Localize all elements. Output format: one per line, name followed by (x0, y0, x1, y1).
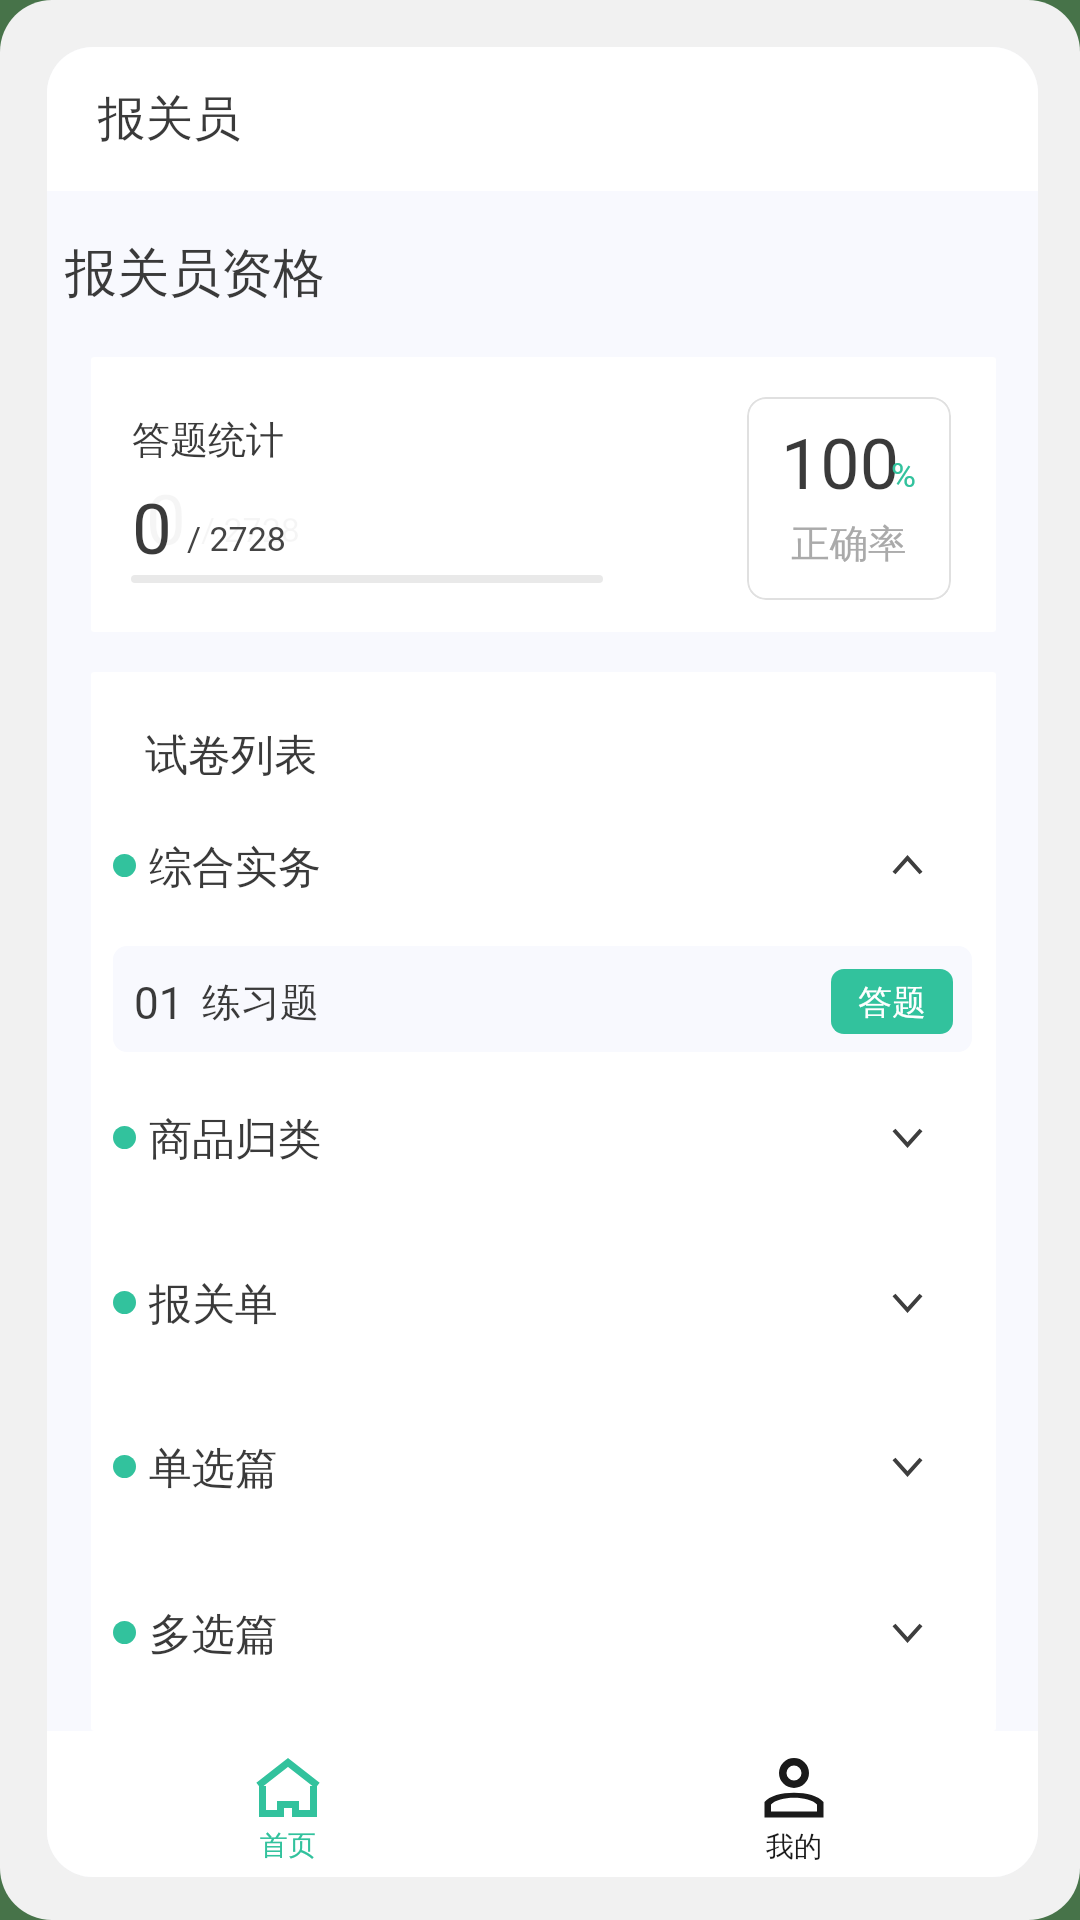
staticText: 报关单 (149, 1278, 278, 1332)
staticText: 综合实务 (149, 841, 321, 895)
button[interactable]: 多选篇 (91, 1592, 996, 1672)
button[interactable]: 首页 (218, 1731, 358, 1877)
staticText: / 2728 (201, 510, 300, 550)
staticText: 正确率 (791, 520, 907, 569)
staticText: 0 (132, 488, 172, 571)
button[interactable]: 商品归类 (91, 1097, 996, 1177)
staticText: 单选篇 (149, 1442, 278, 1496)
staticText: 首页 (260, 1828, 316, 1863)
staticText: 报关员 (98, 89, 241, 149)
staticText: 试卷列表 (145, 729, 317, 783)
staticText: 我的 (766, 1829, 822, 1864)
staticText: 报关员资格 (65, 241, 325, 307)
staticText: 多选篇 (149, 1608, 278, 1662)
staticText: 0 (146, 479, 186, 562)
button[interactable]: 01 (113, 946, 972, 1052)
staticText: 100 (781, 424, 900, 506)
button[interactable]: 答题 (831, 969, 953, 1034)
staticText: 01 (134, 978, 184, 1030)
button[interactable]: 单选篇 (91, 1426, 996, 1506)
button[interactable]: 综合实务 (91, 825, 996, 905)
staticText: 商品归类 (149, 1113, 321, 1167)
button[interactable]: 报关单 (91, 1262, 996, 1342)
staticText: 答题 (858, 981, 926, 1024)
staticText: 练习题 (202, 978, 319, 1027)
staticText: % (891, 455, 916, 495)
staticText: 答题统计 (132, 416, 284, 464)
staticText: / 2728 (187, 519, 286, 559)
button[interactable]: 我的 (724, 1731, 864, 1877)
